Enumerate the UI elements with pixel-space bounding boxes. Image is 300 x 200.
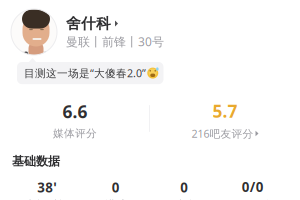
button[interactable]: 舍什科 xyxy=(11,9,300,55)
staticText: 曼联丨前锋丨30号 xyxy=(66,33,164,49)
staticText: 5.7 xyxy=(212,99,237,122)
staticText: 舍什科 xyxy=(66,14,111,32)
staticText: 0 xyxy=(112,178,120,196)
staticText: 目测这一场是“大傻春2.0” xyxy=(24,66,146,80)
staticText: 助攻 xyxy=(173,198,195,200)
staticText: 6.6 xyxy=(62,100,87,123)
staticText: 216吧友评分 xyxy=(191,126,253,141)
staticText: 进球 xyxy=(105,198,127,200)
staticText: 0/0 xyxy=(242,178,264,196)
staticText: 媒体评分 xyxy=(53,127,97,140)
staticText: 基础数据 xyxy=(12,154,60,169)
staticText: 38' xyxy=(37,178,57,196)
button[interactable]: 5.7 xyxy=(150,102,300,138)
staticText: 0 xyxy=(180,178,188,196)
staticText: 出场时间 xyxy=(25,198,69,200)
